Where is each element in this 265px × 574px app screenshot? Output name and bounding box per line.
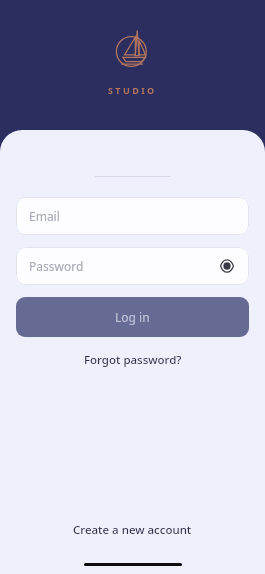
button[interactable]: Password xyxy=(16,247,249,285)
button[interactable]: Forgot password? xyxy=(76,349,190,371)
staticText: Create a new account xyxy=(73,522,192,538)
button[interactable]: Show password xyxy=(218,257,236,275)
button[interactable]: Create a new account xyxy=(65,519,200,541)
staticText: Log in xyxy=(115,309,150,325)
staticText: Email xyxy=(29,208,236,224)
staticText: Password xyxy=(29,258,218,274)
staticText: STUDIO xyxy=(108,84,157,96)
button[interactable]: Email xyxy=(16,197,249,235)
button[interactable]: Log in xyxy=(16,297,249,337)
staticText: Forgot password? xyxy=(84,352,182,368)
